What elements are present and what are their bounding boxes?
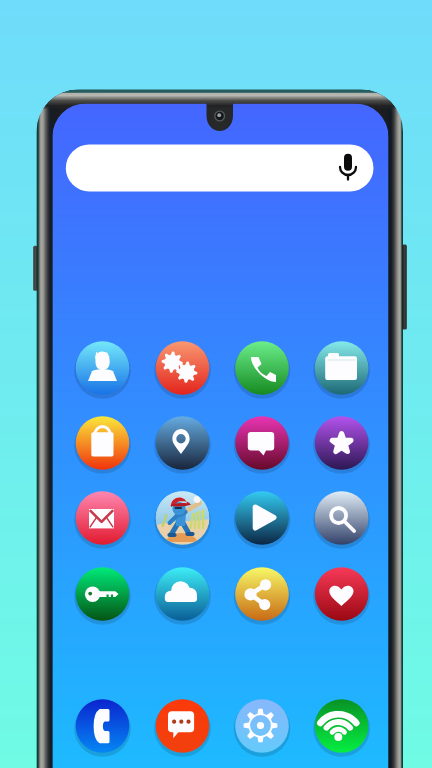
button[interactable]: Search (315, 491, 369, 545)
button[interactable]: Phone (76, 699, 130, 753)
button[interactable]: Share (235, 567, 289, 621)
button[interactable]: Video (235, 491, 289, 545)
button[interactable]: Settings (235, 699, 289, 753)
button[interactable]: Passwords (76, 567, 130, 621)
button[interactable]: Maps (156, 416, 210, 470)
button[interactable]: Shop (76, 416, 130, 470)
button[interactable]: Phone (235, 341, 289, 395)
button[interactable]: Contacts (76, 341, 130, 395)
button[interactable]: Wi-Fi (315, 699, 369, 753)
button[interactable]: Files (315, 341, 369, 395)
button[interactable]: Messaging (156, 699, 210, 753)
button[interactable]: Cloud (156, 567, 210, 621)
button[interactable]: Health (315, 567, 369, 621)
button[interactable]: Favorites (315, 416, 369, 470)
button[interactable]: Mail (76, 491, 130, 545)
button[interactable]: Messages (235, 416, 289, 470)
button[interactable]: Baseball Game (156, 491, 210, 545)
button[interactable]: Search (66, 145, 374, 192)
button[interactable]: Tools (156, 341, 210, 395)
